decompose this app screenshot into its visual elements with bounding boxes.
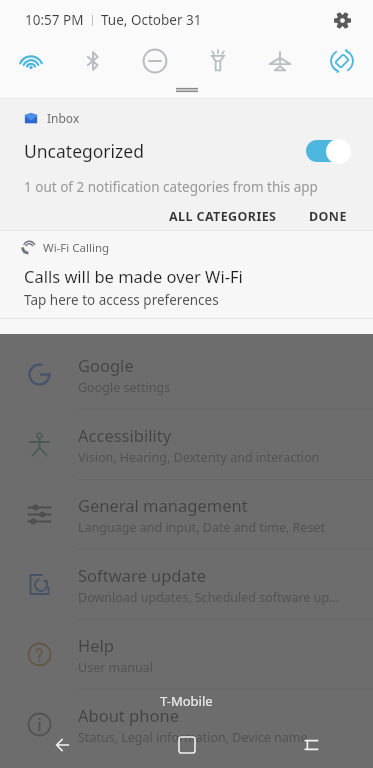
- staticText: Vision, Hearing, Dexterity and interacti…: [78, 449, 320, 466]
- button[interactable]: Auto rotate: [320, 40, 364, 82]
- button[interactable]: Recent apps: [249, 722, 373, 768]
- button[interactable]: Flashlight: [196, 40, 240, 82]
- button[interactable]: Uncategorized notifications toggle: [303, 136, 355, 166]
- button[interactable]: About phone: [0, 690, 373, 759]
- staticText: Help: [78, 634, 114, 656]
- staticText: Accessibility: [78, 424, 172, 446]
- staticText: 10:57 PM: [25, 11, 84, 29]
- staticText: Tue, October 31: [101, 11, 202, 29]
- staticText: T-Mobile: [160, 692, 213, 710]
- staticText: DONE: [309, 208, 347, 222]
- staticText: Inbox: [47, 110, 80, 126]
- staticText: Tap here to access preferences: [24, 291, 219, 309]
- staticText: Google: [78, 354, 134, 376]
- button[interactable]: Wi-Fi: [9, 40, 53, 82]
- button[interactable]: General management: [0, 480, 373, 550]
- staticText: Uncategorized: [24, 139, 144, 163]
- button[interactable]: Back: [0, 722, 125, 768]
- staticText: Status, Legal information, Device name: [78, 729, 308, 746]
- button[interactable]: Settings: [325, 3, 359, 37]
- staticText: Wi-Fi Calling: [43, 240, 110, 256]
- button[interactable]: Help: [0, 620, 373, 690]
- button[interactable]: Google: [0, 340, 373, 410]
- staticText: General management: [78, 494, 248, 516]
- staticText: 1 out of 2 notification categories from …: [24, 178, 318, 196]
- staticText: Google settings: [78, 379, 171, 396]
- button[interactable]: Inbox: [0, 99, 373, 200]
- staticText: Calls will be made over Wi-Fi: [24, 265, 243, 287]
- button[interactable]: Software update: [0, 550, 373, 620]
- button[interactable]: Airplane mode: [258, 40, 302, 82]
- button[interactable]: Bluetooth: [71, 40, 115, 82]
- staticText: ALL CATEGORIES: [169, 208, 277, 222]
- staticText: Software update: [78, 564, 206, 586]
- staticText: Download updates, Scheduled software up…: [78, 589, 339, 606]
- staticText: User manual: [78, 659, 153, 676]
- button[interactable]: ALL CATEGORIES: [157, 200, 289, 230]
- button[interactable]: Wi-Fi Calling: [0, 231, 373, 318]
- button[interactable]: DONE: [297, 200, 359, 230]
- staticText: Language and input, Date and time, Reset: [78, 519, 325, 536]
- button[interactable]: Accessibility: [0, 410, 373, 480]
- button[interactable]: Home: [125, 722, 249, 768]
- staticText: About phone: [78, 704, 179, 726]
- button[interactable]: Do not disturb: [133, 40, 177, 82]
